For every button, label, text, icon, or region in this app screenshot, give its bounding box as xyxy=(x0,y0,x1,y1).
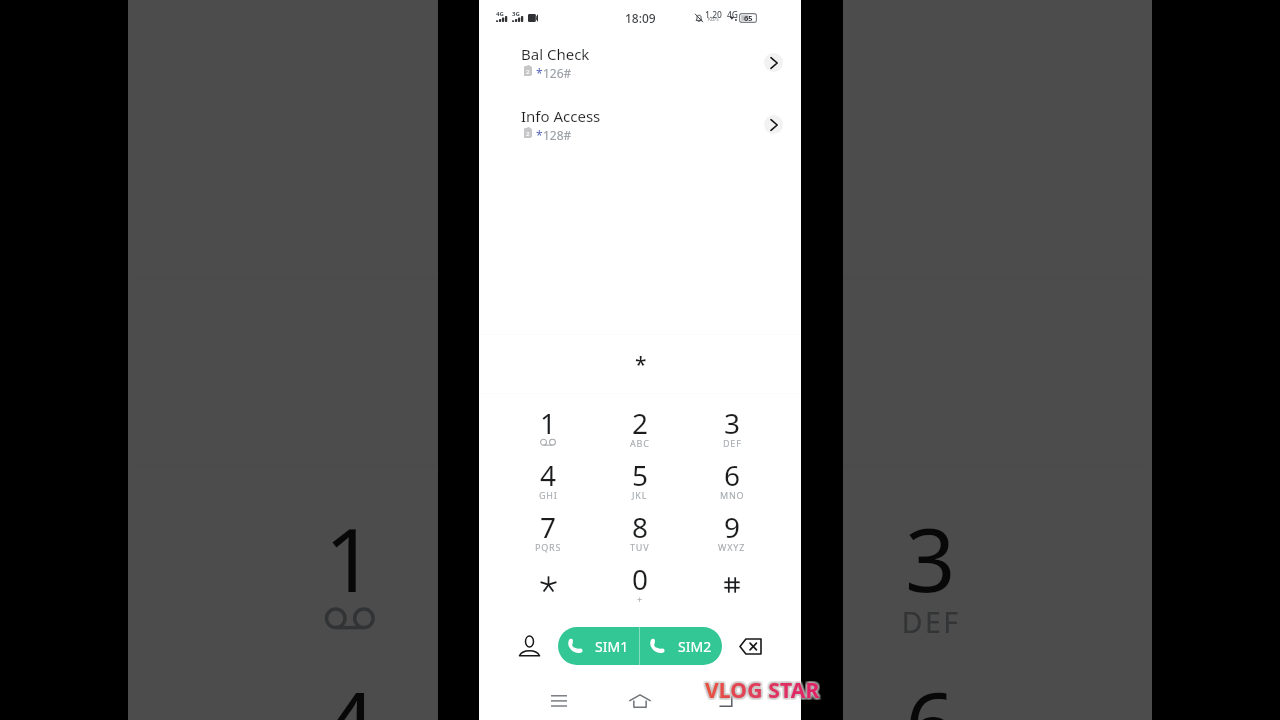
staticText: + xyxy=(637,593,643,605)
staticText: JKL xyxy=(632,489,648,501)
staticText: 4G xyxy=(727,9,739,21)
staticText: 3G xyxy=(512,10,520,18)
staticText: VLOG STAR xyxy=(706,676,821,705)
staticText: VLOG STAR xyxy=(705,676,820,705)
staticText: VLOG STAR xyxy=(707,676,822,705)
staticText: 2 xyxy=(615,498,668,618)
staticText: 4 xyxy=(325,662,378,720)
staticText: PQRS xyxy=(535,541,562,553)
staticText: ABC xyxy=(608,602,672,640)
button[interactable]: Dial 4 xyxy=(502,455,594,507)
staticText: VLOG STAR xyxy=(706,677,821,706)
staticText: VLOG STAR xyxy=(703,678,818,707)
button[interactable]: Dial 0 xyxy=(594,559,686,611)
staticText: WXYZ xyxy=(718,541,746,553)
staticText: 6 xyxy=(905,662,958,720)
staticText: 65 xyxy=(744,13,753,23)
button[interactable]: Dial # xyxy=(686,559,778,611)
staticText: DEF xyxy=(723,437,742,449)
button[interactable]: SIM2 xyxy=(640,627,722,665)
staticText: GHI xyxy=(539,489,558,501)
staticText: * xyxy=(536,127,543,143)
staticText: 1.20 xyxy=(705,9,722,21)
staticText: 128# xyxy=(543,127,572,143)
button[interactable]: Info Access xyxy=(479,103,801,151)
staticText: VLOG STAR xyxy=(704,678,819,707)
staticText: VLOG STAR xyxy=(704,676,819,705)
staticText: * xyxy=(536,65,543,81)
staticText: * xyxy=(624,327,662,419)
staticText: VLOG STAR xyxy=(706,678,821,707)
staticText: Info Access xyxy=(521,106,601,126)
staticText: VLOG STAR xyxy=(703,675,818,704)
button[interactable]: Dial 9 xyxy=(686,507,778,559)
staticText: SIM2 xyxy=(678,637,712,656)
button[interactable]: Dial 6 xyxy=(686,455,778,507)
staticText: 0 xyxy=(632,560,649,598)
button[interactable]: Dial * xyxy=(502,559,594,611)
staticText: VLOG STAR xyxy=(705,677,820,706)
button[interactable]: Dial 1 xyxy=(502,403,594,455)
button[interactable]: Dial 2 xyxy=(594,403,686,455)
button[interactable]: Home xyxy=(625,686,655,716)
button[interactable]: Dial 8 xyxy=(594,507,686,559)
staticText: 4G xyxy=(496,10,504,18)
staticText: KB/s xyxy=(708,16,719,23)
staticText: 1 xyxy=(325,498,378,618)
staticText: 5 xyxy=(615,662,668,720)
staticText: 4 xyxy=(540,456,557,494)
staticText: 2 xyxy=(526,130,530,138)
staticText: 2 xyxy=(632,404,649,442)
staticText: * xyxy=(635,350,647,379)
staticText: VLOG STAR xyxy=(703,676,818,705)
staticText: VLOG STAR xyxy=(707,675,822,704)
staticText: SIM1 xyxy=(595,637,629,656)
button[interactable]: Dial 7 xyxy=(502,507,594,559)
button[interactable]: Dial 3 xyxy=(686,403,778,455)
staticText: VLOG STAR xyxy=(704,677,819,706)
button[interactable]: Bal Check xyxy=(479,41,801,89)
staticText: VLOG STAR xyxy=(706,674,821,703)
button[interactable]: Dial 5 xyxy=(594,455,686,507)
staticText: 8 xyxy=(632,508,649,546)
button[interactable]: Open Bal Check xyxy=(764,53,783,72)
staticText: VLOG STAR xyxy=(703,674,818,703)
staticText: VLOG STAR xyxy=(705,678,820,707)
staticText: VLOG STAR xyxy=(703,677,818,706)
staticText: ABC xyxy=(630,437,650,449)
button[interactable]: Contacts xyxy=(514,631,544,661)
staticText: 6 xyxy=(724,456,741,494)
staticText: 1 xyxy=(540,404,557,442)
staticText: DEF xyxy=(902,602,962,640)
staticText: Bal Check xyxy=(521,44,590,64)
staticText: TUV xyxy=(630,541,650,553)
staticText: 2 xyxy=(526,68,530,76)
button[interactable]: Backspace xyxy=(735,631,765,661)
staticText: MNO xyxy=(720,489,745,501)
staticText: VLOG STAR xyxy=(705,674,820,703)
button[interactable]: Back xyxy=(710,686,740,716)
staticText: 9 xyxy=(724,508,741,546)
staticText: VLOG STAR xyxy=(707,674,822,703)
staticText: VLOG STAR xyxy=(707,677,822,706)
staticText: 3 xyxy=(905,498,958,618)
staticText: VLOG STAR xyxy=(705,675,820,704)
staticText: 3 xyxy=(724,404,741,442)
staticText: 18:09 xyxy=(625,10,656,26)
button[interactable]: SIM1 xyxy=(558,627,639,665)
button[interactable]: Recent apps xyxy=(544,686,574,716)
staticText: 7 xyxy=(540,508,557,546)
staticText: 5 xyxy=(632,456,649,494)
staticText: VLOG STAR xyxy=(706,675,821,704)
button[interactable]: Open Info Access xyxy=(764,115,783,134)
staticText: VLOG STAR xyxy=(704,675,819,704)
staticText: VLOG STAR xyxy=(707,678,822,707)
staticText: 126# xyxy=(543,65,572,81)
staticText: VLOG STAR xyxy=(704,674,819,703)
